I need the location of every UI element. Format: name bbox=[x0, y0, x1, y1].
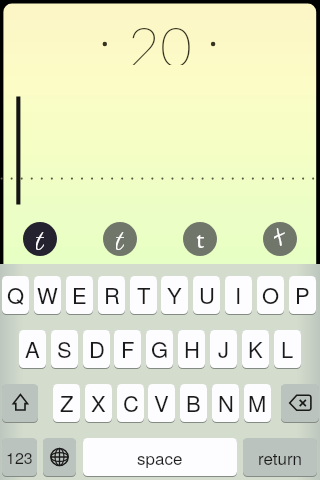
button[interactable]: I bbox=[225, 276, 252, 314]
staticText: t bbox=[274, 222, 286, 256]
button[interactable]: Shift bbox=[2, 384, 38, 422]
button[interactable]: P bbox=[289, 276, 316, 314]
button[interactable]: F bbox=[114, 330, 141, 368]
button[interactable]: N bbox=[212, 384, 239, 422]
button[interactable]: Change keyboard bbox=[43, 438, 76, 476]
button[interactable]: J bbox=[210, 330, 237, 368]
staticText: V bbox=[154, 387, 169, 419]
button[interactable]: Q bbox=[2, 276, 29, 314]
staticText: A bbox=[25, 333, 40, 365]
button[interactable]: Backspace bbox=[281, 384, 319, 422]
button[interactable]: 123 bbox=[2, 438, 37, 476]
staticText: M bbox=[248, 387, 267, 419]
staticText: H bbox=[184, 333, 200, 365]
button[interactable]: Font style bbox=[183, 222, 217, 256]
staticText: 20 bbox=[128, 13, 192, 65]
button[interactable]: O bbox=[257, 276, 284, 314]
staticText: J bbox=[218, 333, 230, 365]
staticText: S bbox=[57, 333, 72, 365]
staticText: space bbox=[137, 445, 183, 469]
staticText: t bbox=[116, 222, 124, 256]
staticText: N bbox=[218, 387, 234, 419]
staticText: L bbox=[281, 333, 294, 365]
staticText: Y bbox=[167, 279, 182, 311]
button[interactable]: G bbox=[146, 330, 173, 368]
button[interactable]: E bbox=[66, 276, 93, 314]
button[interactable]: Font style bbox=[263, 222, 297, 256]
button[interactable]: A bbox=[19, 330, 46, 368]
button[interactable]: Z bbox=[53, 384, 80, 422]
staticText: Q bbox=[7, 279, 25, 311]
staticText: I bbox=[235, 279, 242, 311]
staticText: Z bbox=[60, 387, 74, 419]
button[interactable]: M bbox=[244, 384, 271, 422]
staticText: U bbox=[199, 279, 215, 311]
button[interactable]: Font style bbox=[23, 222, 57, 256]
staticText: W bbox=[37, 279, 58, 311]
staticText: return bbox=[258, 445, 303, 469]
staticText: t bbox=[196, 222, 205, 256]
staticText: C bbox=[123, 387, 139, 419]
button[interactable]: U bbox=[193, 276, 220, 314]
staticText: 123 bbox=[6, 446, 33, 469]
button[interactable]: K bbox=[242, 330, 269, 368]
button[interactable]: D bbox=[83, 330, 110, 368]
button[interactable]: R bbox=[98, 276, 125, 314]
button[interactable]: space bbox=[83, 438, 237, 476]
staticText: D bbox=[89, 333, 105, 365]
staticText: F bbox=[121, 333, 135, 365]
staticText: X bbox=[91, 387, 106, 419]
staticText: B bbox=[186, 387, 201, 419]
button[interactable]: L bbox=[274, 330, 301, 368]
button[interactable]: S bbox=[51, 330, 78, 368]
button[interactable]: H bbox=[178, 330, 205, 368]
button[interactable]: V bbox=[148, 384, 175, 422]
staticText: t bbox=[36, 222, 44, 256]
button[interactable]: return bbox=[243, 438, 317, 476]
staticText: P bbox=[295, 279, 310, 311]
staticText: K bbox=[248, 333, 263, 365]
staticText: O bbox=[262, 279, 280, 311]
staticText: T bbox=[137, 279, 151, 311]
staticText: G bbox=[151, 333, 169, 365]
staticText: R bbox=[104, 279, 120, 311]
button[interactable]: W bbox=[34, 276, 61, 314]
button[interactable]: C bbox=[117, 384, 144, 422]
staticText: E bbox=[72, 279, 87, 311]
button[interactable]: Y bbox=[161, 276, 188, 314]
button[interactable]: B bbox=[180, 384, 207, 422]
button[interactable]: T bbox=[130, 276, 157, 314]
button[interactable]: X bbox=[85, 384, 112, 422]
button[interactable]: Font style bbox=[103, 222, 137, 256]
